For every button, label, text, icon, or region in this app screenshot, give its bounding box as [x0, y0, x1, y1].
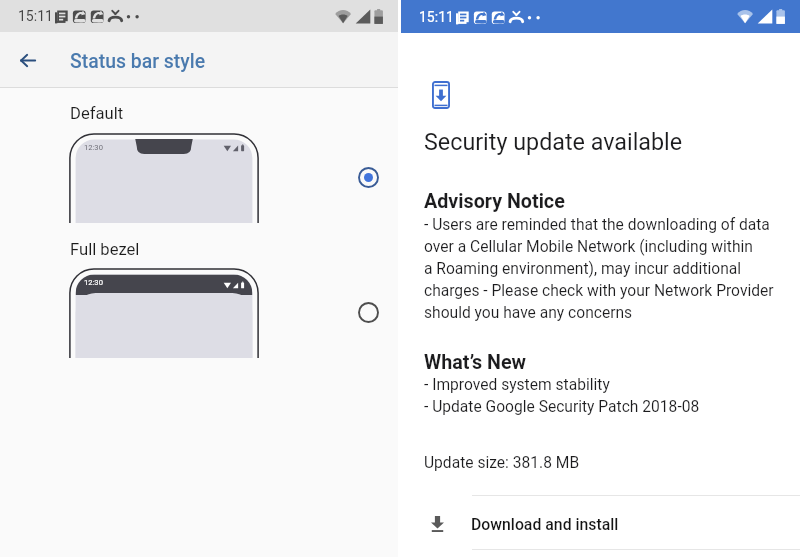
staticText: Status bar style: [70, 50, 206, 73]
button[interactable]: Download and install: [401, 496, 800, 549]
staticText: What’s New: [424, 351, 527, 374]
staticText: Default: [70, 104, 124, 123]
button[interactable]: Default status bar style, selected: [355, 164, 381, 190]
staticText: Advisory Notice: [424, 190, 565, 213]
staticText: 12:30: [84, 143, 103, 152]
staticText: Security update available: [424, 128, 683, 155]
staticText: Download and install: [471, 515, 619, 534]
button[interactable]: Back: [0, 32, 56, 88]
staticText: - Improved system stability - Update Goo…: [424, 376, 700, 416]
staticText: 12:30: [84, 278, 103, 287]
staticText: Full bezel: [70, 240, 140, 259]
staticText: 15:11: [18, 8, 53, 24]
button[interactable]: Full bezel status bar style: [355, 299, 381, 325]
staticText: - Users are reminded that the downloadin…: [424, 216, 774, 322]
staticText: Update size: 381.8 MB: [424, 454, 580, 472]
staticText: 15:11: [419, 9, 454, 25]
